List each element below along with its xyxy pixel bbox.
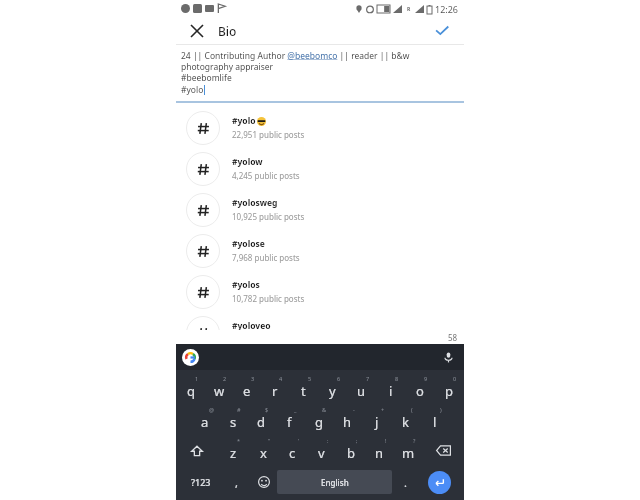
button[interactable]: 4 <box>261 373 289 404</box>
button[interactable]: ) <box>420 404 449 435</box>
button[interactable]: #yolose <box>176 230 464 271</box>
button[interactable]: _ <box>275 404 304 435</box>
staticText: : <box>327 437 329 444</box>
staticText: #yolo <box>181 84 204 96</box>
staticText: ?123 <box>191 476 211 488</box>
staticText: - <box>353 406 355 413</box>
button[interactable]: #yolow <box>176 148 464 189</box>
button[interactable]: - <box>333 404 362 435</box>
staticText: ; <box>356 437 358 444</box>
button[interactable]: # <box>219 404 247 435</box>
staticText: c <box>289 444 296 462</box>
button[interactable]: 3 <box>233 373 261 404</box>
button[interactable]: & <box>304 404 333 435</box>
staticText: 8 <box>395 375 399 382</box>
staticText: & <box>322 406 327 413</box>
button[interactable]: Google <box>182 349 199 366</box>
staticText: . <box>404 475 407 490</box>
staticText: 6 <box>337 375 341 382</box>
staticText: #beebomlife <box>181 72 232 84</box>
staticText: t <box>301 382 306 400</box>
staticText: #yolow <box>232 156 263 168</box>
staticText: 5 <box>308 375 312 382</box>
staticText: #yolo <box>232 115 256 127</box>
staticText: 10,925 public posts <box>232 211 305 222</box>
button[interactable]: Enter <box>421 468 458 496</box>
staticText: #yolose <box>232 238 265 250</box>
button[interactable]: , <box>222 466 250 498</box>
button[interactable]: Shift <box>176 435 218 466</box>
staticText: 4 <box>279 375 283 382</box>
button[interactable]: 1 <box>177 373 205 404</box>
staticText: o <box>416 382 424 400</box>
staticText: 4,245 public posts <box>232 170 300 181</box>
staticText: q <box>187 382 195 400</box>
staticText: English <box>321 477 349 488</box>
button[interactable]: #yolo <box>176 107 464 148</box>
button[interactable]: ?123 <box>180 466 222 498</box>
staticText: ) <box>440 406 442 413</box>
staticText: 1 <box>195 375 199 382</box>
button[interactable]: #yoloveo <box>176 312 464 353</box>
staticText: j <box>375 413 379 431</box>
staticText: 58 <box>448 332 458 343</box>
button[interactable]: Voice input <box>440 349 456 365</box>
button[interactable]: ! <box>365 435 394 466</box>
button[interactable]: : <box>307 435 336 466</box>
button[interactable]: #yolosweg <box>176 189 464 230</box>
button[interactable]: * <box>218 435 248 466</box>
staticText: ! <box>385 437 387 444</box>
staticText: n <box>375 444 384 462</box>
staticText: + <box>381 406 385 413</box>
button[interactable]: ( <box>391 404 420 435</box>
staticText: x <box>260 444 267 462</box>
button[interactable]: 0 <box>434 373 463 404</box>
staticText: 2 <box>223 375 227 382</box>
staticText: 7,968 public posts <box>232 252 300 263</box>
button[interactable]: 2 <box>205 373 233 404</box>
button[interactable] <box>176 353 464 367</box>
button[interactable]: #yolos <box>176 271 464 312</box>
staticText: a <box>201 413 209 431</box>
staticText: ( <box>411 406 413 413</box>
staticText: Bio <box>218 23 237 39</box>
staticText: 9 <box>424 375 428 382</box>
button[interactable]: Emoji <box>250 466 277 498</box>
staticText: l <box>433 413 437 431</box>
button[interactable]: . <box>392 466 419 498</box>
button[interactable]: @ <box>191 404 219 435</box>
button[interactable]: Done <box>430 19 454 43</box>
button[interactable]: ' <box>278 435 307 466</box>
staticText: # <box>237 406 241 413</box>
button[interactable]: 7 <box>347 373 376 404</box>
button[interactable]: Backspace <box>423 435 464 466</box>
staticText: p <box>445 382 453 400</box>
button[interactable]: 9 <box>405 373 434 404</box>
staticText: _ <box>294 406 297 413</box>
staticText: 0 <box>453 375 457 382</box>
staticText: v <box>318 444 325 462</box>
staticText: ' <box>298 437 300 444</box>
button[interactable]: English <box>277 470 392 494</box>
staticText: y <box>329 382 336 400</box>
button[interactable]: $ <box>247 404 275 435</box>
staticText: w <box>214 382 225 400</box>
button[interactable]: ; <box>336 435 365 466</box>
button[interactable]: 5 <box>289 373 318 404</box>
staticText: , <box>235 475 238 490</box>
staticText: 5,575 public posts <box>232 334 300 345</box>
button[interactable]: + <box>362 404 391 435</box>
button[interactable]: 8 <box>376 373 405 404</box>
button[interactable]: " <box>248 435 278 466</box>
button[interactable]: ? <box>394 435 423 466</box>
button[interactable]: 6 <box>318 373 347 404</box>
staticText: * <box>237 437 241 444</box>
staticText: ? <box>413 437 416 444</box>
staticText: 24 || Contributing Author @beebomco || r… <box>181 50 459 72</box>
button[interactable]: Close <box>186 20 208 42</box>
staticText: #yolosweg <box>232 197 278 209</box>
staticText: r <box>272 382 278 400</box>
staticText: 10,782 public posts <box>232 293 305 304</box>
staticText: h <box>343 413 352 431</box>
staticText: 3 <box>251 375 255 382</box>
